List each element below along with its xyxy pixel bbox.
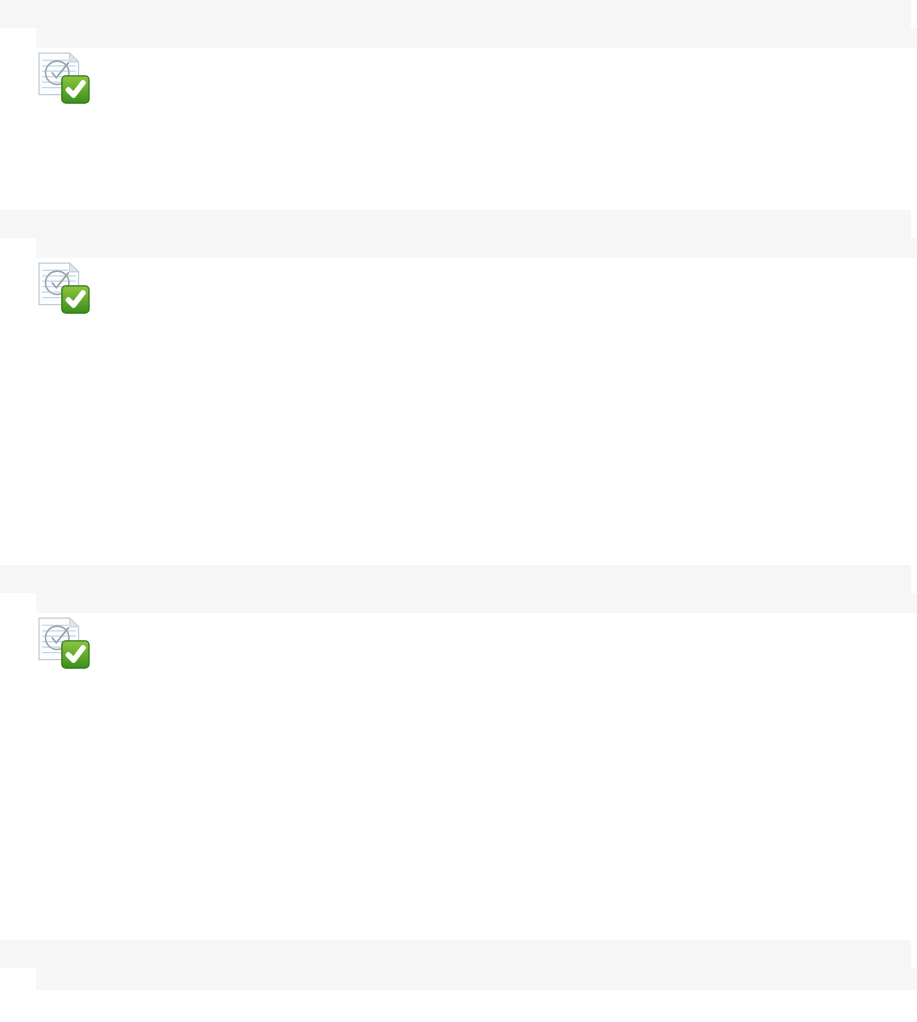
button[interactable]: Verified document 3	[0, 613, 917, 940]
button[interactable]: Verified document 2	[0, 258, 917, 565]
button[interactable]: Verified document 1	[0, 48, 917, 210]
